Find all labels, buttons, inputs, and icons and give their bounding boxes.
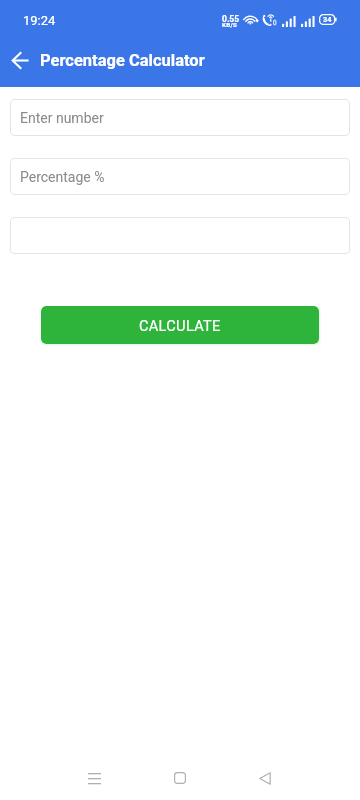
staticText: Percentage Calculator bbox=[40, 51, 205, 70]
button[interactable]: Home bbox=[152, 756, 208, 800]
button[interactable]: Recents bbox=[66, 756, 122, 800]
staticText: KB/S bbox=[222, 21, 237, 28]
button[interactable]: Result bbox=[10, 217, 350, 254]
staticText: 0.55 bbox=[222, 14, 240, 24]
button[interactable]: CALCULATE bbox=[41, 306, 319, 344]
staticText: CALCULATE bbox=[139, 317, 221, 334]
button[interactable]: Back bbox=[4, 44, 36, 76]
staticText: 34 bbox=[323, 15, 332, 24]
staticText: 19:24 bbox=[23, 13, 56, 28]
button[interactable]: Back bbox=[237, 756, 293, 800]
button[interactable]: Enter number bbox=[10, 99, 350, 136]
button[interactable]: Percentage % bbox=[10, 158, 350, 195]
staticText: Percentage % bbox=[20, 169, 105, 185]
staticText: Enter number bbox=[20, 110, 104, 126]
